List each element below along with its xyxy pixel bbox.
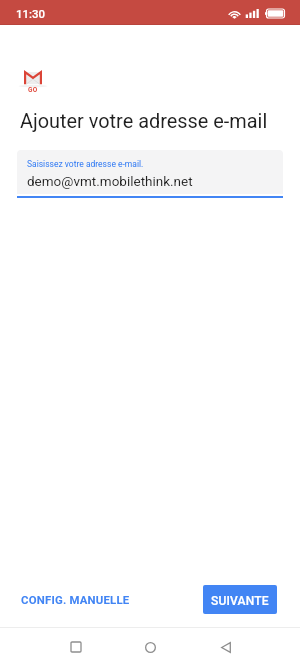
button[interactable]: CONFIG. MANUELLE — [13, 586, 138, 613]
staticText: CONFIG. MANUELLE — [21, 593, 130, 606]
staticText: 11:30 — [16, 7, 45, 20]
button[interactable]: Back — [206, 627, 246, 667]
staticText: Ajouter votre adresse e-mail — [20, 110, 268, 133]
staticText: SUIVANTE — [211, 594, 269, 608]
button[interactable]: Recent apps — [56, 627, 96, 667]
staticText: Saisissez votre adresse e-mail. — [27, 159, 144, 169]
button[interactable]: Saisissez votre adresse e-mail. — [17, 150, 283, 194]
button[interactable]: Home — [130, 627, 170, 667]
staticText: demo@vmt.mobilethink.net — [27, 173, 193, 189]
staticText: GO — [28, 86, 38, 94]
button[interactable]: SUIVANTE — [203, 585, 277, 614]
